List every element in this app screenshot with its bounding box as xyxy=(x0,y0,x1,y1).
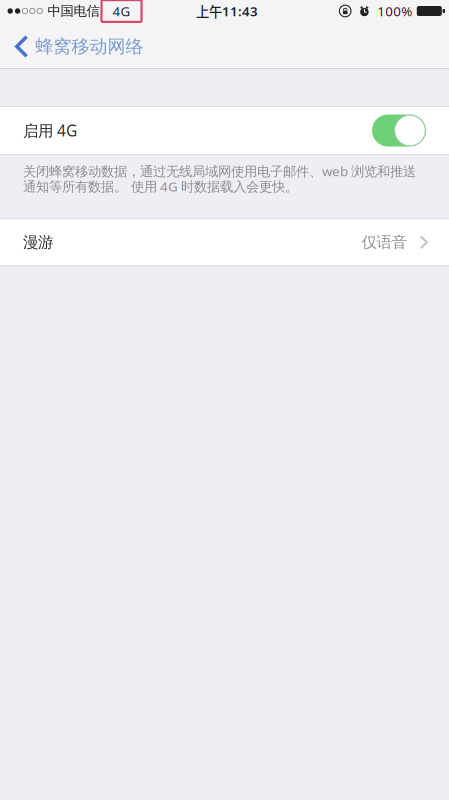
staticText: 上午 xyxy=(196,1,222,21)
staticText: 仅语音 xyxy=(362,233,407,252)
button[interactable]: 启用 4G xyxy=(0,107,449,154)
staticText: 中国电信 xyxy=(47,3,99,19)
staticText: 蜂窝移动网络 xyxy=(35,35,143,58)
staticText: 启用 4G xyxy=(23,120,77,141)
staticText: 11:43 xyxy=(222,2,258,20)
staticText: 通知等所有数据。 使用 4G 时数据载入会更快。 xyxy=(23,177,298,195)
staticText: 100% xyxy=(377,2,412,20)
button[interactable]: 蜂窝移动网络 xyxy=(0,22,153,68)
staticText: 关闭蜂窝移动数据，通过无线局域网使用电子邮件、web 浏览和推送 xyxy=(23,162,416,180)
staticText: 4G xyxy=(112,2,130,20)
button[interactable]: 漫游 xyxy=(0,219,449,265)
staticText: 漫游 xyxy=(23,233,53,252)
